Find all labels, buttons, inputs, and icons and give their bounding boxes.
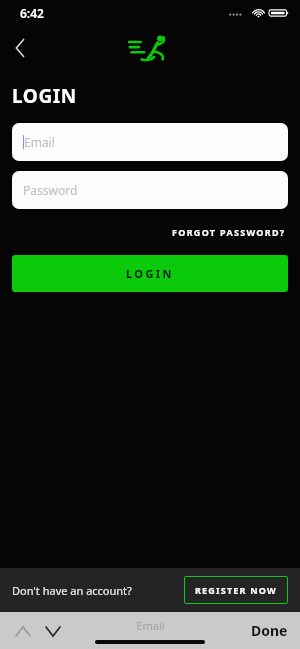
button[interactable]: Password <box>12 171 288 209</box>
staticText: LOGIN <box>12 83 77 109</box>
button[interactable]: Email <box>12 123 288 161</box>
staticText: LOGIN <box>126 266 174 281</box>
staticText: Done <box>251 621 288 640</box>
button[interactable]: Previous field <box>8 616 38 646</box>
staticText: Password <box>23 182 78 198</box>
button[interactable]: FORGOT PASSWORD? <box>158 223 300 241</box>
staticText: Email <box>136 618 165 633</box>
button[interactable]: Done <box>239 617 300 644</box>
button[interactable]: Back <box>0 28 40 68</box>
staticText: REGISTER NOW <box>195 584 277 596</box>
button[interactable]: Next field <box>38 616 68 646</box>
staticText: FORGOT PASSWORD? <box>172 226 286 238</box>
button[interactable]: REGISTER NOW <box>184 576 288 604</box>
button[interactable]: LOGIN <box>12 255 288 292</box>
staticText: Email <box>24 134 55 150</box>
staticText: 6:42 <box>20 5 44 21</box>
staticText: Don't have an account? <box>12 583 132 598</box>
